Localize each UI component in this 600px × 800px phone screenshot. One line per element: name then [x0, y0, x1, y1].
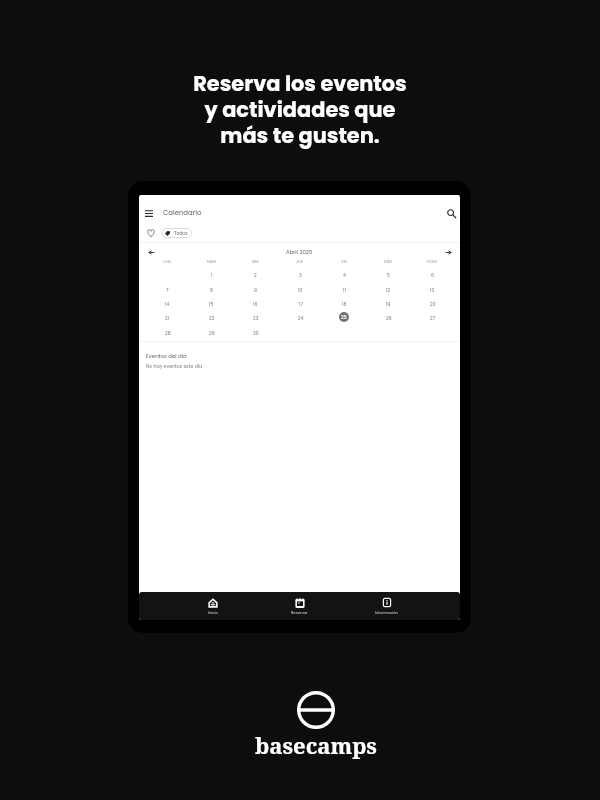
button[interactable]: 20 [427, 298, 438, 309]
button[interactable]: 6 [427, 269, 438, 280]
staticText: 9 [254, 287, 257, 293]
staticText: 19 [386, 301, 391, 307]
staticText: 23 [253, 315, 259, 321]
button[interactable]: 4 [339, 269, 350, 280]
button[interactable]: Previous month [143, 244, 159, 260]
button[interactable]: 17 [295, 298, 306, 309]
button[interactable]: 19 [383, 298, 394, 309]
staticText: 7 [166, 287, 169, 293]
button[interactable]: 8 [206, 284, 217, 295]
staticText: Abril 2025 [286, 248, 313, 256]
button[interactable]: 24 [295, 312, 306, 323]
staticText: 14 [165, 301, 170, 307]
staticText: 24 [298, 315, 304, 321]
staticText: VIE [341, 259, 348, 265]
button[interactable]: 3 [295, 269, 306, 280]
staticText: 17 [299, 301, 303, 307]
button[interactable]: 2 [250, 269, 261, 280]
staticText: 13 [430, 287, 435, 293]
button[interactable]: Inicio [169, 592, 256, 620]
button[interactable]: Menu [141, 205, 157, 221]
button[interactable]: Next month [440, 244, 456, 260]
staticText: 6 [431, 272, 434, 278]
button[interactable]: 21 [162, 312, 173, 323]
button[interactable]: 28 [162, 327, 173, 338]
staticText: No hay eventos este día [146, 363, 203, 370]
staticText: 2 [254, 272, 257, 278]
staticText: Reserva los eventos y actividades que má… [193, 69, 407, 150]
button[interactable]: 18 [339, 298, 350, 309]
button[interactable]: Reservar [256, 592, 343, 620]
staticText: 15 [209, 301, 214, 307]
staticText: 26 [386, 315, 392, 321]
staticText: 4 [343, 272, 346, 278]
staticText: Información [375, 610, 399, 615]
staticText: 10 [298, 287, 303, 293]
button[interactable]: Información [343, 592, 430, 620]
staticText: 12 [386, 287, 391, 293]
staticText: Todos [174, 230, 188, 236]
button[interactable]: 15 [206, 298, 217, 309]
staticText: 11 [343, 287, 346, 293]
staticText: MAR [207, 259, 216, 265]
button[interactable]: 27 [427, 312, 438, 323]
staticText: 18 [342, 301, 347, 307]
staticText: basecamps [255, 730, 377, 760]
button[interactable]: 16 [250, 298, 261, 309]
staticText: 22 [209, 315, 215, 321]
button[interactable]: 14 [162, 298, 173, 309]
button[interactable]: 23 [250, 312, 261, 323]
staticText: 27 [430, 315, 436, 321]
staticText: 1 [211, 272, 213, 278]
staticText: Inicio [208, 610, 218, 615]
button[interactable]: 5 [383, 269, 394, 280]
staticText: 25 [341, 314, 347, 320]
button[interactable]: 7 [162, 284, 173, 295]
staticText: 28 [165, 330, 171, 336]
staticText: Calendario [163, 208, 202, 218]
button[interactable]: Favorites [143, 225, 159, 241]
staticText: Reservar [291, 610, 308, 615]
button[interactable]: 29 [206, 327, 217, 338]
button[interactable]: 26 [383, 312, 394, 323]
staticText: 5 [387, 272, 390, 278]
staticText: Eventos del día [146, 352, 187, 360]
button[interactable]: 13 [427, 284, 438, 295]
staticText: MIE [252, 259, 259, 265]
staticText: 29 [209, 330, 215, 336]
staticText: DOM [427, 259, 437, 265]
staticText: 16 [253, 301, 258, 307]
button[interactable]: Search [443, 205, 459, 221]
button[interactable]: 25 [339, 312, 349, 322]
button[interactable]: 10 [295, 284, 306, 295]
staticText: JUE [296, 259, 304, 265]
button[interactable]: 9 [250, 284, 261, 295]
staticText: 21 [165, 315, 170, 321]
staticText: 30 [253, 330, 259, 336]
staticText: 3 [299, 272, 302, 278]
button[interactable]: 11 [339, 284, 350, 295]
staticText: 20 [430, 301, 436, 307]
staticText: 8 [210, 287, 213, 293]
staticText: SAB [384, 259, 392, 265]
staticText: LUN [163, 259, 171, 265]
button[interactable]: 30 [250, 327, 261, 338]
button[interactable]: 22 [206, 312, 217, 323]
button[interactable]: 1 [206, 269, 217, 280]
button[interactable]: 12 [383, 284, 394, 295]
button[interactable]: Todos [161, 228, 192, 238]
